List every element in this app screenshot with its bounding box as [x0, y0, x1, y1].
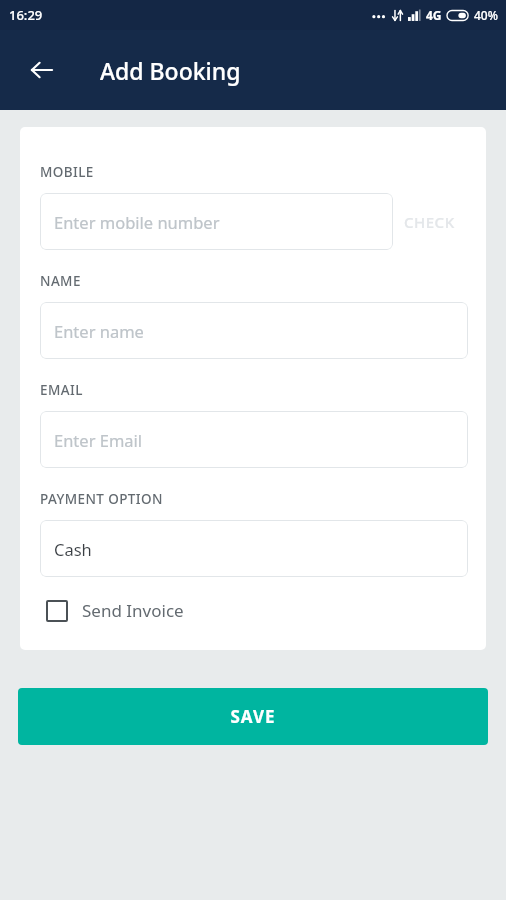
button[interactable]: SAVE [18, 688, 488, 745]
button[interactable]: Enter Email [40, 411, 468, 468]
staticText: Cash [54, 538, 92, 560]
staticText: MOBILE [40, 163, 94, 181]
button[interactable]: Back [20, 48, 64, 92]
staticText: 40% [474, 7, 498, 23]
staticText: SAVE [230, 705, 276, 728]
button[interactable]: Send Invoice [40, 597, 192, 624]
staticText: Add Booking [100, 55, 241, 86]
button[interactable]: Cash [40, 520, 468, 577]
staticText: 4G [426, 7, 442, 23]
button[interactable]: Enter mobile number [40, 193, 393, 250]
staticText: PAYMENT OPTION [40, 490, 163, 508]
staticText: CHECK [404, 212, 455, 232]
staticText: Send Invoice [82, 599, 184, 622]
button[interactable]: Enter name [40, 302, 468, 359]
staticText: Enter Email [54, 429, 143, 451]
staticText: Enter name [54, 320, 144, 342]
staticText: EMAIL [40, 381, 83, 399]
staticText: Enter mobile number [54, 211, 220, 233]
staticText: 16:29 [9, 6, 43, 24]
button[interactable]: CHECK [393, 193, 466, 250]
staticText: NAME [40, 272, 81, 290]
